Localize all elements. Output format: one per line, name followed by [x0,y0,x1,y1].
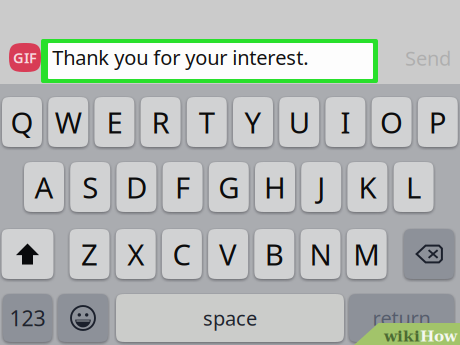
staticText: U [289,102,310,141]
staticText: R [152,102,170,141]
button[interactable]: C [162,229,202,279]
button[interactable]: Q [2,97,42,147]
staticText: M [353,234,380,273]
button[interactable]: D [116,162,156,212]
staticText: return [372,305,430,331]
staticText: wiki [384,327,420,345]
button[interactable]: L [394,162,434,212]
button[interactable]: T [187,97,227,147]
button[interactable]: G [209,162,249,212]
staticText: S [82,167,98,206]
staticText: K [358,167,376,206]
staticText: C [172,234,191,273]
staticText: How [420,327,457,345]
button[interactable]: M [347,229,387,279]
button[interactable]: X [116,229,156,279]
button[interactable]: Thank you for your interest. [48,43,373,79]
button[interactable]: 123 [3,294,52,342]
staticText: D [126,167,147,206]
button[interactable]: P [418,97,458,147]
button[interactable]: H [255,162,295,212]
staticText: Y [244,102,261,141]
staticText: T [199,102,215,141]
staticText: F [175,167,190,206]
staticText: space [203,305,257,331]
staticText: J [317,167,325,206]
button[interactable]: S [70,162,110,212]
staticText: A [34,167,53,206]
staticText: L [406,167,421,206]
button[interactable]: Send [402,43,454,73]
button[interactable]: R [141,97,181,147]
staticText: N [309,234,331,273]
button[interactable]: GIF [9,43,41,72]
staticText: X [127,234,144,273]
staticText: W [55,102,82,141]
button[interactable]: F [163,162,203,212]
staticText: Send [405,45,451,71]
staticText: V [219,234,237,273]
staticText: 123 [9,304,45,332]
button[interactable]: U [279,97,319,147]
staticText: I [340,102,350,141]
button[interactable]: O [372,97,412,147]
button[interactable]: V [208,229,248,279]
button[interactable]: space [116,294,344,342]
staticText: P [429,102,447,141]
staticText: Q [10,102,33,141]
staticText: H [264,167,286,206]
button[interactable]: J [301,162,341,212]
button[interactable]: B [254,229,294,279]
button[interactable]: Z [69,229,109,279]
staticText: E [106,102,122,141]
button[interactable]: A [24,162,64,212]
staticText: O [380,102,403,141]
button[interactable]: W [48,97,88,147]
staticText: Z [81,234,98,273]
staticText: Thank you for your interest. [52,44,308,71]
button[interactable]: I [325,97,365,147]
button[interactable]: E [94,97,134,147]
button[interactable]: Emoji [58,294,108,342]
button[interactable]: K [347,162,387,212]
staticText: G [218,167,239,206]
button[interactable]: Delete [404,229,454,279]
button[interactable]: Y [233,97,273,147]
button[interactable]: N [300,229,340,279]
button[interactable]: Shift [1,229,53,279]
button[interactable]: return [349,294,454,342]
staticText: B [265,234,284,273]
staticText: GIF [13,48,37,67]
